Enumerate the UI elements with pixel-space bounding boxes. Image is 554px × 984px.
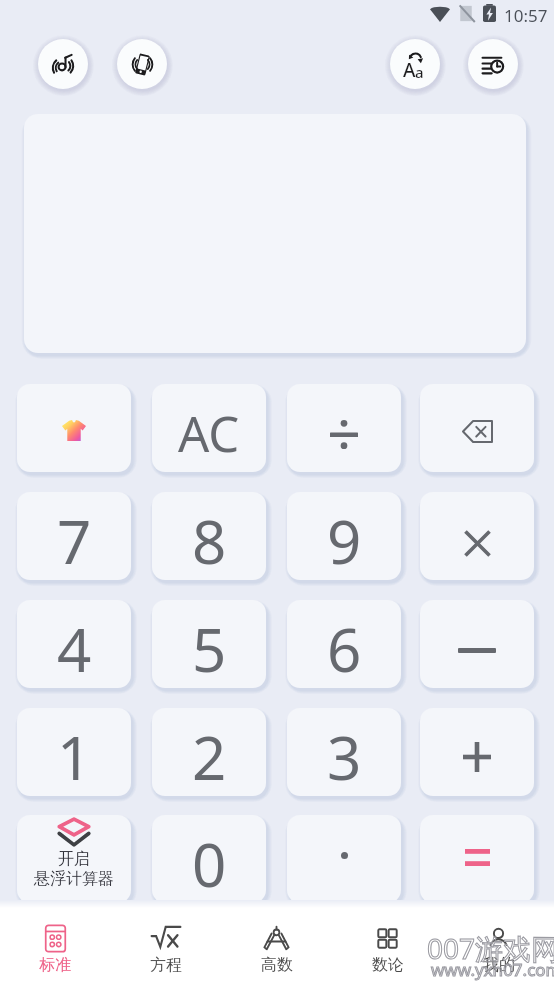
button[interactable]: 我的 — [443, 908, 554, 984]
staticText: 1 — [57, 716, 92, 796]
button[interactable] — [420, 708, 534, 796]
button[interactable]: 标准 — [0, 908, 110, 984]
staticText: 悬浮计算器 — [34, 869, 114, 889]
staticText: 方程 — [150, 955, 182, 975]
staticText: www.yxh07.com — [431, 958, 554, 981]
staticText: 3 — [327, 716, 362, 796]
staticText: 5 — [192, 608, 227, 688]
button[interactable]: 开启 — [17, 815, 131, 903]
staticText: 4 — [57, 608, 92, 688]
button[interactable]: 1 — [17, 708, 131, 796]
button[interactable]: 方程 — [110, 908, 221, 984]
staticText: 9 — [327, 500, 362, 580]
staticText: 10:57 — [504, 4, 548, 27]
button[interactable]: 2 — [152, 708, 266, 796]
button[interactable]: 8 — [152, 492, 266, 580]
button[interactable]: 3 — [287, 708, 401, 796]
staticText: 6 — [327, 608, 362, 688]
staticText: 我的 — [483, 955, 515, 975]
button[interactable] — [287, 815, 401, 903]
staticText: 7 — [57, 500, 92, 580]
button[interactable] — [420, 600, 534, 688]
button[interactable] — [420, 384, 534, 472]
button[interactable]: 高数 — [221, 908, 332, 984]
button[interactable]: History — [468, 39, 518, 89]
staticText: 007游戏网 — [427, 929, 554, 967]
button[interactable]: AC — [152, 384, 266, 472]
staticText: 2 — [192, 716, 227, 796]
button[interactable]: Font size — [390, 39, 440, 89]
staticText: 高数 — [261, 955, 293, 975]
button[interactable]: 7 — [17, 492, 131, 580]
button[interactable]: 数论 — [332, 908, 443, 984]
button[interactable]: 6 — [287, 600, 401, 688]
button[interactable] — [420, 815, 534, 903]
button[interactable]: Sound — [38, 39, 88, 89]
staticText: 8 — [192, 500, 227, 580]
staticText: 开启 — [58, 849, 90, 869]
button[interactable]: 9 — [287, 492, 401, 580]
staticText: a — [415, 62, 424, 82]
button[interactable] — [420, 492, 534, 580]
staticText: A — [403, 57, 416, 83]
staticText: AC — [178, 400, 240, 467]
staticText: 标准 — [39, 955, 71, 975]
button[interactable]: 4 — [17, 600, 131, 688]
staticText: 数论 — [372, 955, 404, 975]
button[interactable]: 0 — [152, 815, 266, 903]
button[interactable]: Vibrate — [117, 39, 167, 89]
button[interactable] — [287, 384, 401, 472]
staticText: 0 — [192, 823, 227, 903]
button[interactable] — [17, 384, 131, 472]
button[interactable]: 5 — [152, 600, 266, 688]
